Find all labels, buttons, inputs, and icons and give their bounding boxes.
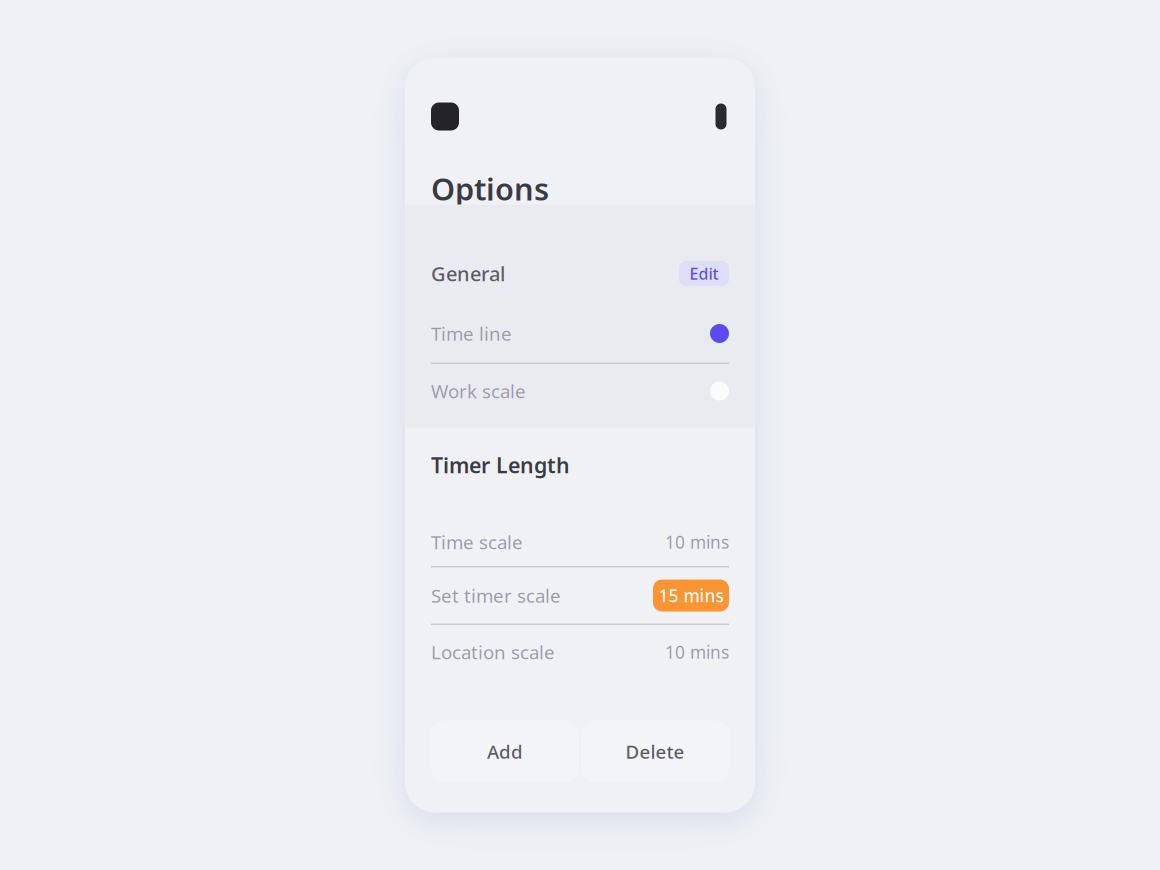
staticText: Delete (625, 739, 684, 764)
staticText: Time line (431, 321, 512, 346)
button[interactable]: Work scale (431, 364, 729, 418)
staticText: Edit (689, 263, 718, 284)
button[interactable]: Set timer scale (431, 567, 729, 623)
staticText: 15 mins (658, 584, 723, 607)
staticText: 10 mins (665, 640, 729, 663)
staticText: Location scale (431, 640, 555, 664)
staticText: Add (487, 739, 523, 764)
button[interactable]: Delete (581, 720, 729, 782)
button[interactable]: Time line (431, 304, 729, 362)
staticText: Set timer scale (431, 583, 561, 608)
staticText: Timer Length (431, 451, 570, 479)
staticText: Work scale (431, 379, 526, 403)
button[interactable]: General (431, 242, 729, 304)
staticText: General (431, 260, 505, 287)
staticText: Options (431, 168, 549, 209)
staticText: Time scale (431, 530, 523, 554)
button[interactable]: Add (431, 720, 579, 782)
button[interactable]: More options (713, 101, 729, 131)
button[interactable]: Back (431, 102, 459, 130)
button[interactable]: Time scale (431, 518, 729, 566)
button[interactable]: Location scale (431, 625, 729, 679)
staticText: 10 mins (665, 530, 729, 553)
